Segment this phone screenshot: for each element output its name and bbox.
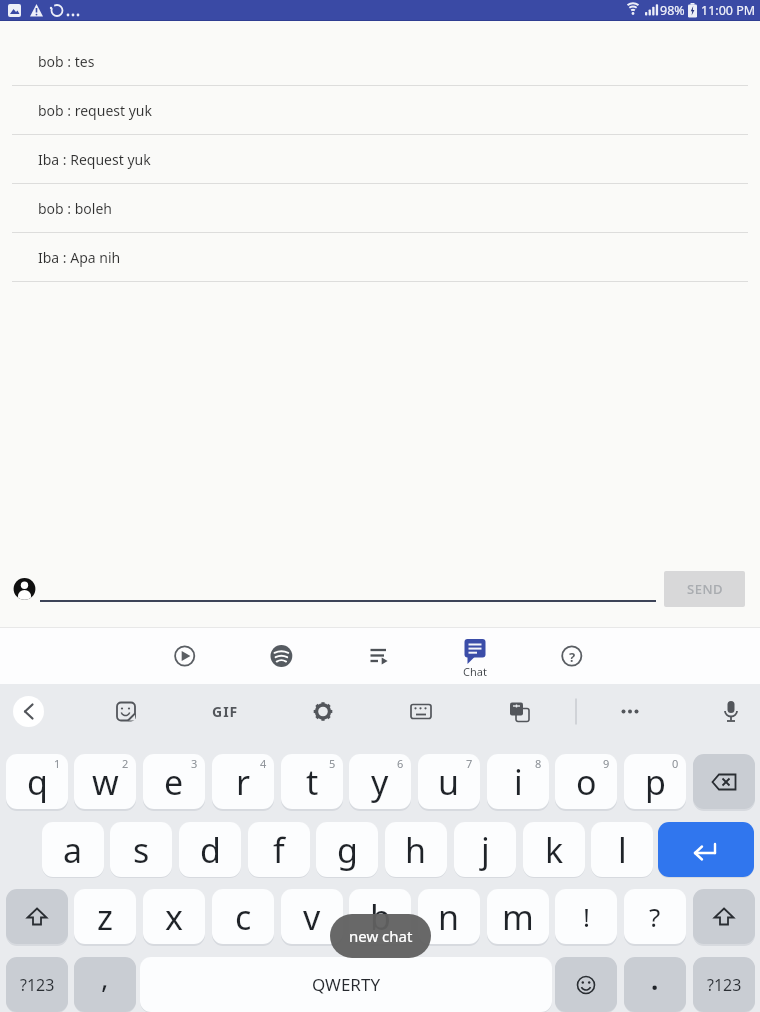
button[interactable]: . [624, 957, 686, 1012]
button[interactable] [13, 696, 44, 727]
button[interactable] [555, 957, 617, 1012]
button[interactable]: m [487, 889, 549, 944]
staticText: bob : request yuk [38, 101, 152, 120]
staticText: SEND [687, 580, 723, 598]
button[interactable]: a [42, 822, 104, 877]
button[interactable]: u [418, 754, 480, 809]
button[interactable]: v [281, 889, 343, 944]
staticText: j [481, 827, 490, 873]
staticText: a [63, 827, 83, 873]
button[interactable]: i [487, 754, 549, 809]
button[interactable] [693, 754, 755, 809]
button[interactable]: e [143, 754, 205, 809]
button[interactable]: f [248, 822, 310, 877]
staticText: ? [569, 648, 576, 664]
button[interactable]: h [385, 822, 447, 877]
staticText: Iba : Apa nih [38, 248, 121, 267]
button[interactable] [693, 889, 755, 944]
button[interactable]: s [110, 822, 172, 877]
button[interactable]: n [418, 889, 480, 944]
button[interactable]: j [454, 822, 516, 877]
button[interactable] [344, 627, 413, 684]
staticText: 3 [191, 756, 198, 771]
button[interactable]: Iba : Apa nih [0, 233, 760, 281]
button[interactable]: q [6, 754, 68, 809]
staticText: ?123 [707, 974, 742, 996]
staticText: q [27, 759, 48, 805]
button[interactable]: , [74, 957, 136, 1012]
staticText: y [371, 759, 389, 805]
button[interactable]: bob : tes [0, 37, 760, 85]
staticText: 5 [329, 756, 336, 771]
staticText: i [514, 759, 523, 805]
staticText: 6 [397, 756, 404, 771]
staticText: Chat [463, 664, 487, 679]
staticText: p [645, 759, 666, 805]
button[interactable]: ?123 [693, 957, 755, 1012]
staticText: c [235, 894, 252, 940]
button[interactable] [441, 627, 510, 684]
staticText: , [101, 958, 109, 996]
staticText: 7 [466, 756, 473, 771]
button[interactable]: z [74, 889, 136, 944]
staticText: GIF [212, 702, 239, 721]
button[interactable]: c [212, 889, 274, 944]
button[interactable]: w [74, 754, 136, 809]
button[interactable]: o [555, 754, 617, 809]
staticText: bob : tes [38, 52, 95, 71]
button[interactable]: x [143, 889, 205, 944]
staticText: b [370, 894, 391, 940]
button[interactable]: p [624, 754, 686, 809]
button[interactable]: ?123 [6, 957, 68, 1012]
button[interactable]: bob : request yuk [0, 86, 760, 134]
staticText: r [236, 759, 251, 805]
button[interactable] [6, 889, 68, 944]
staticText: e [164, 759, 184, 805]
staticText: 0 [672, 756, 679, 771]
button[interactable]: b [349, 889, 411, 944]
staticText: bob : boleh [38, 199, 112, 218]
button[interactable]: QWERTY [140, 957, 552, 1012]
staticText: n [438, 894, 460, 940]
staticText: Iba : Request yuk [38, 150, 151, 169]
button[interactable]: r [212, 754, 274, 809]
staticText: t [306, 759, 319, 805]
staticText: ?123 [20, 974, 55, 996]
staticText: d [200, 827, 221, 873]
button[interactable]: y [349, 754, 411, 809]
button[interactable]: bob : boleh [0, 184, 760, 232]
staticText: 1 [54, 756, 61, 771]
button[interactable]: ? [624, 889, 686, 944]
staticText: m [502, 894, 534, 940]
button[interactable]: l [591, 822, 653, 877]
staticText: u [438, 759, 460, 805]
button[interactable]: t [281, 754, 343, 809]
staticText: QWERTY [312, 973, 381, 996]
staticText: new chat [349, 926, 413, 946]
staticText: s [133, 827, 150, 873]
button[interactable] [150, 627, 219, 684]
staticText: v [303, 894, 321, 940]
staticText: l [618, 827, 627, 873]
button[interactable] [247, 627, 316, 684]
staticText: 11:00 PM [701, 2, 756, 19]
staticText: 98% [660, 2, 685, 19]
button[interactable]: d [179, 822, 241, 877]
button[interactable]: ! [555, 889, 617, 944]
button[interactable] [537, 627, 606, 684]
staticText: ? [649, 899, 661, 934]
button[interactable]: g [316, 822, 378, 877]
button[interactable] [658, 822, 754, 877]
button[interactable]: GIF [207, 701, 243, 722]
staticText: w [92, 759, 119, 805]
button[interactable]: SEND [664, 571, 745, 607]
staticText: f [273, 827, 285, 873]
button[interactable]: k [523, 822, 585, 877]
staticText: h [405, 827, 427, 873]
staticText: o [576, 759, 597, 805]
button[interactable]: Iba : Request yuk [0, 135, 760, 183]
staticText: x [165, 894, 183, 940]
staticText: ! [583, 899, 590, 934]
staticText: . [651, 962, 659, 997]
staticText: 9 [603, 756, 610, 771]
